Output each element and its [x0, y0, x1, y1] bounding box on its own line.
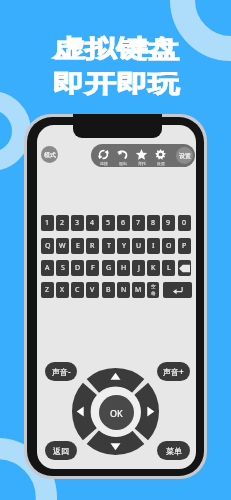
staticText: 拜托 [138, 161, 146, 166]
button[interactable]: L [162, 260, 175, 276]
button[interactable]: M [132, 282, 145, 298]
button[interactable]: 9 [162, 215, 175, 231]
staticText: 5 [106, 218, 111, 228]
staticText: 声音- [52, 366, 71, 377]
button[interactable]: 设置 [176, 147, 193, 164]
button[interactable]: Y [117, 238, 130, 254]
staticText: S [61, 263, 65, 273]
staticText: 模式 [44, 151, 56, 159]
staticText: 即开即玩 [53, 69, 179, 99]
staticText: 设置 [157, 161, 165, 166]
staticText: 8 [151, 218, 156, 228]
button[interactable]: G [102, 260, 115, 276]
button[interactable]: D [71, 260, 84, 276]
button[interactable]: J [132, 260, 145, 276]
staticText: L [167, 263, 171, 273]
button[interactable]: B [102, 282, 115, 298]
staticText: Z [45, 285, 50, 295]
staticText: 空 格 [151, 284, 156, 296]
staticText: A [45, 263, 50, 273]
staticText: 1 [45, 218, 50, 228]
staticText: H [121, 263, 127, 273]
staticText: G [106, 263, 112, 273]
button[interactable]: N [117, 282, 130, 298]
staticText: N [121, 285, 127, 295]
staticText: F [91, 263, 95, 273]
staticText: 9 [166, 218, 171, 228]
staticText: B [106, 285, 111, 295]
staticText: M [135, 285, 142, 295]
button[interactable]: OK [99, 395, 134, 430]
button[interactable]: Backspace [178, 260, 191, 276]
staticText: D [75, 263, 81, 273]
button[interactable]: U [132, 238, 145, 254]
staticText: 声音+ [163, 366, 184, 377]
button[interactable]: I [147, 238, 160, 254]
button[interactable]: H [117, 260, 130, 276]
staticText: 3 [75, 218, 80, 228]
button[interactable]: 4 [86, 215, 99, 231]
button[interactable]: 0 [178, 215, 191, 231]
button[interactable]: 8 [147, 215, 160, 231]
staticText: 0 [182, 218, 187, 228]
staticText: P [182, 241, 187, 251]
staticText: V [90, 285, 95, 295]
staticText: R [90, 241, 95, 251]
button[interactable]: 设置 [151, 146, 170, 166]
button[interactable]: Z [41, 282, 54, 298]
staticText: I [152, 241, 155, 251]
button[interactable]: 菜单 [157, 441, 190, 460]
staticText: Y [122, 241, 126, 251]
button[interactable]: T [102, 238, 115, 254]
button[interactable]: 拜托 [132, 146, 151, 166]
staticText: W [59, 241, 66, 251]
button[interactable]: P [178, 238, 191, 254]
staticText: OK [110, 407, 123, 419]
button[interactable]: W [56, 238, 69, 254]
staticText: 7 [136, 218, 141, 228]
button[interactable]: 退出 [113, 146, 132, 166]
button[interactable]: Enter [163, 282, 192, 298]
button[interactable]: F [86, 260, 99, 276]
staticText: 连接 [100, 161, 108, 166]
staticText: C [75, 285, 80, 295]
staticText: O [166, 241, 172, 251]
staticText: 返回 [53, 446, 69, 456]
button[interactable]: 返回 [45, 441, 77, 460]
button[interactable]: 1 [41, 215, 54, 231]
button[interactable]: 6 [117, 215, 130, 231]
staticText: 虚拟键盘 [53, 34, 179, 64]
staticText: 6 [121, 218, 126, 228]
button[interactable]: E [71, 238, 84, 254]
button[interactable]: 声音- [45, 362, 77, 381]
staticText: J [138, 263, 140, 273]
staticText: 4 [90, 218, 95, 228]
staticText: X [60, 285, 65, 295]
button[interactable]: 声音+ [157, 362, 190, 381]
staticText: K [151, 263, 156, 273]
button[interactable]: C [71, 282, 84, 298]
button[interactable]: 2 [56, 215, 69, 231]
staticText: 退出 [119, 161, 127, 166]
button[interactable]: A [41, 260, 54, 276]
staticText: 菜单 [166, 446, 182, 456]
staticText: 设置 [179, 152, 191, 160]
button[interactable]: R [86, 238, 99, 254]
staticText: E [76, 241, 80, 251]
button[interactable]: K [147, 260, 160, 276]
staticText: T [107, 241, 111, 251]
button[interactable]: 空 格 [147, 282, 159, 298]
button[interactable]: 连接 [94, 146, 113, 166]
button[interactable]: 7 [132, 215, 145, 231]
button[interactable]: 3 [71, 215, 84, 231]
staticText: U [136, 241, 142, 251]
button[interactable]: Q [41, 238, 54, 254]
button[interactable]: 5 [102, 215, 115, 231]
button[interactable]: O [162, 238, 175, 254]
button[interactable]: X [56, 282, 69, 298]
button[interactable]: V [86, 282, 99, 298]
button[interactable]: S [56, 260, 69, 276]
staticText: Q [45, 241, 51, 251]
staticText: 2 [60, 218, 65, 228]
button[interactable]: 模式 [41, 146, 58, 163]
